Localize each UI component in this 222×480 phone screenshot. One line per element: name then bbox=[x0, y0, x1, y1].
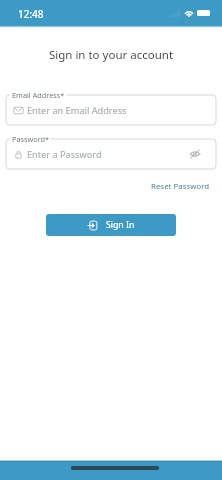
staticText: 12:48 bbox=[18, 7, 44, 21]
button[interactable]: Reset Password bbox=[151, 180, 222, 193]
staticText: Enter an Email Address bbox=[27, 104, 127, 117]
staticText: Sign in to your account bbox=[0, 47, 222, 63]
staticText: Email Address* bbox=[12, 90, 65, 100]
staticText: Sign In bbox=[106, 219, 135, 231]
staticText: Password* bbox=[12, 134, 50, 144]
staticText: Enter a Password bbox=[27, 148, 102, 161]
staticText: Reset Password bbox=[151, 181, 210, 192]
button[interactable]: Show password bbox=[189, 148, 201, 160]
button[interactable]: Sign In bbox=[46, 214, 176, 236]
